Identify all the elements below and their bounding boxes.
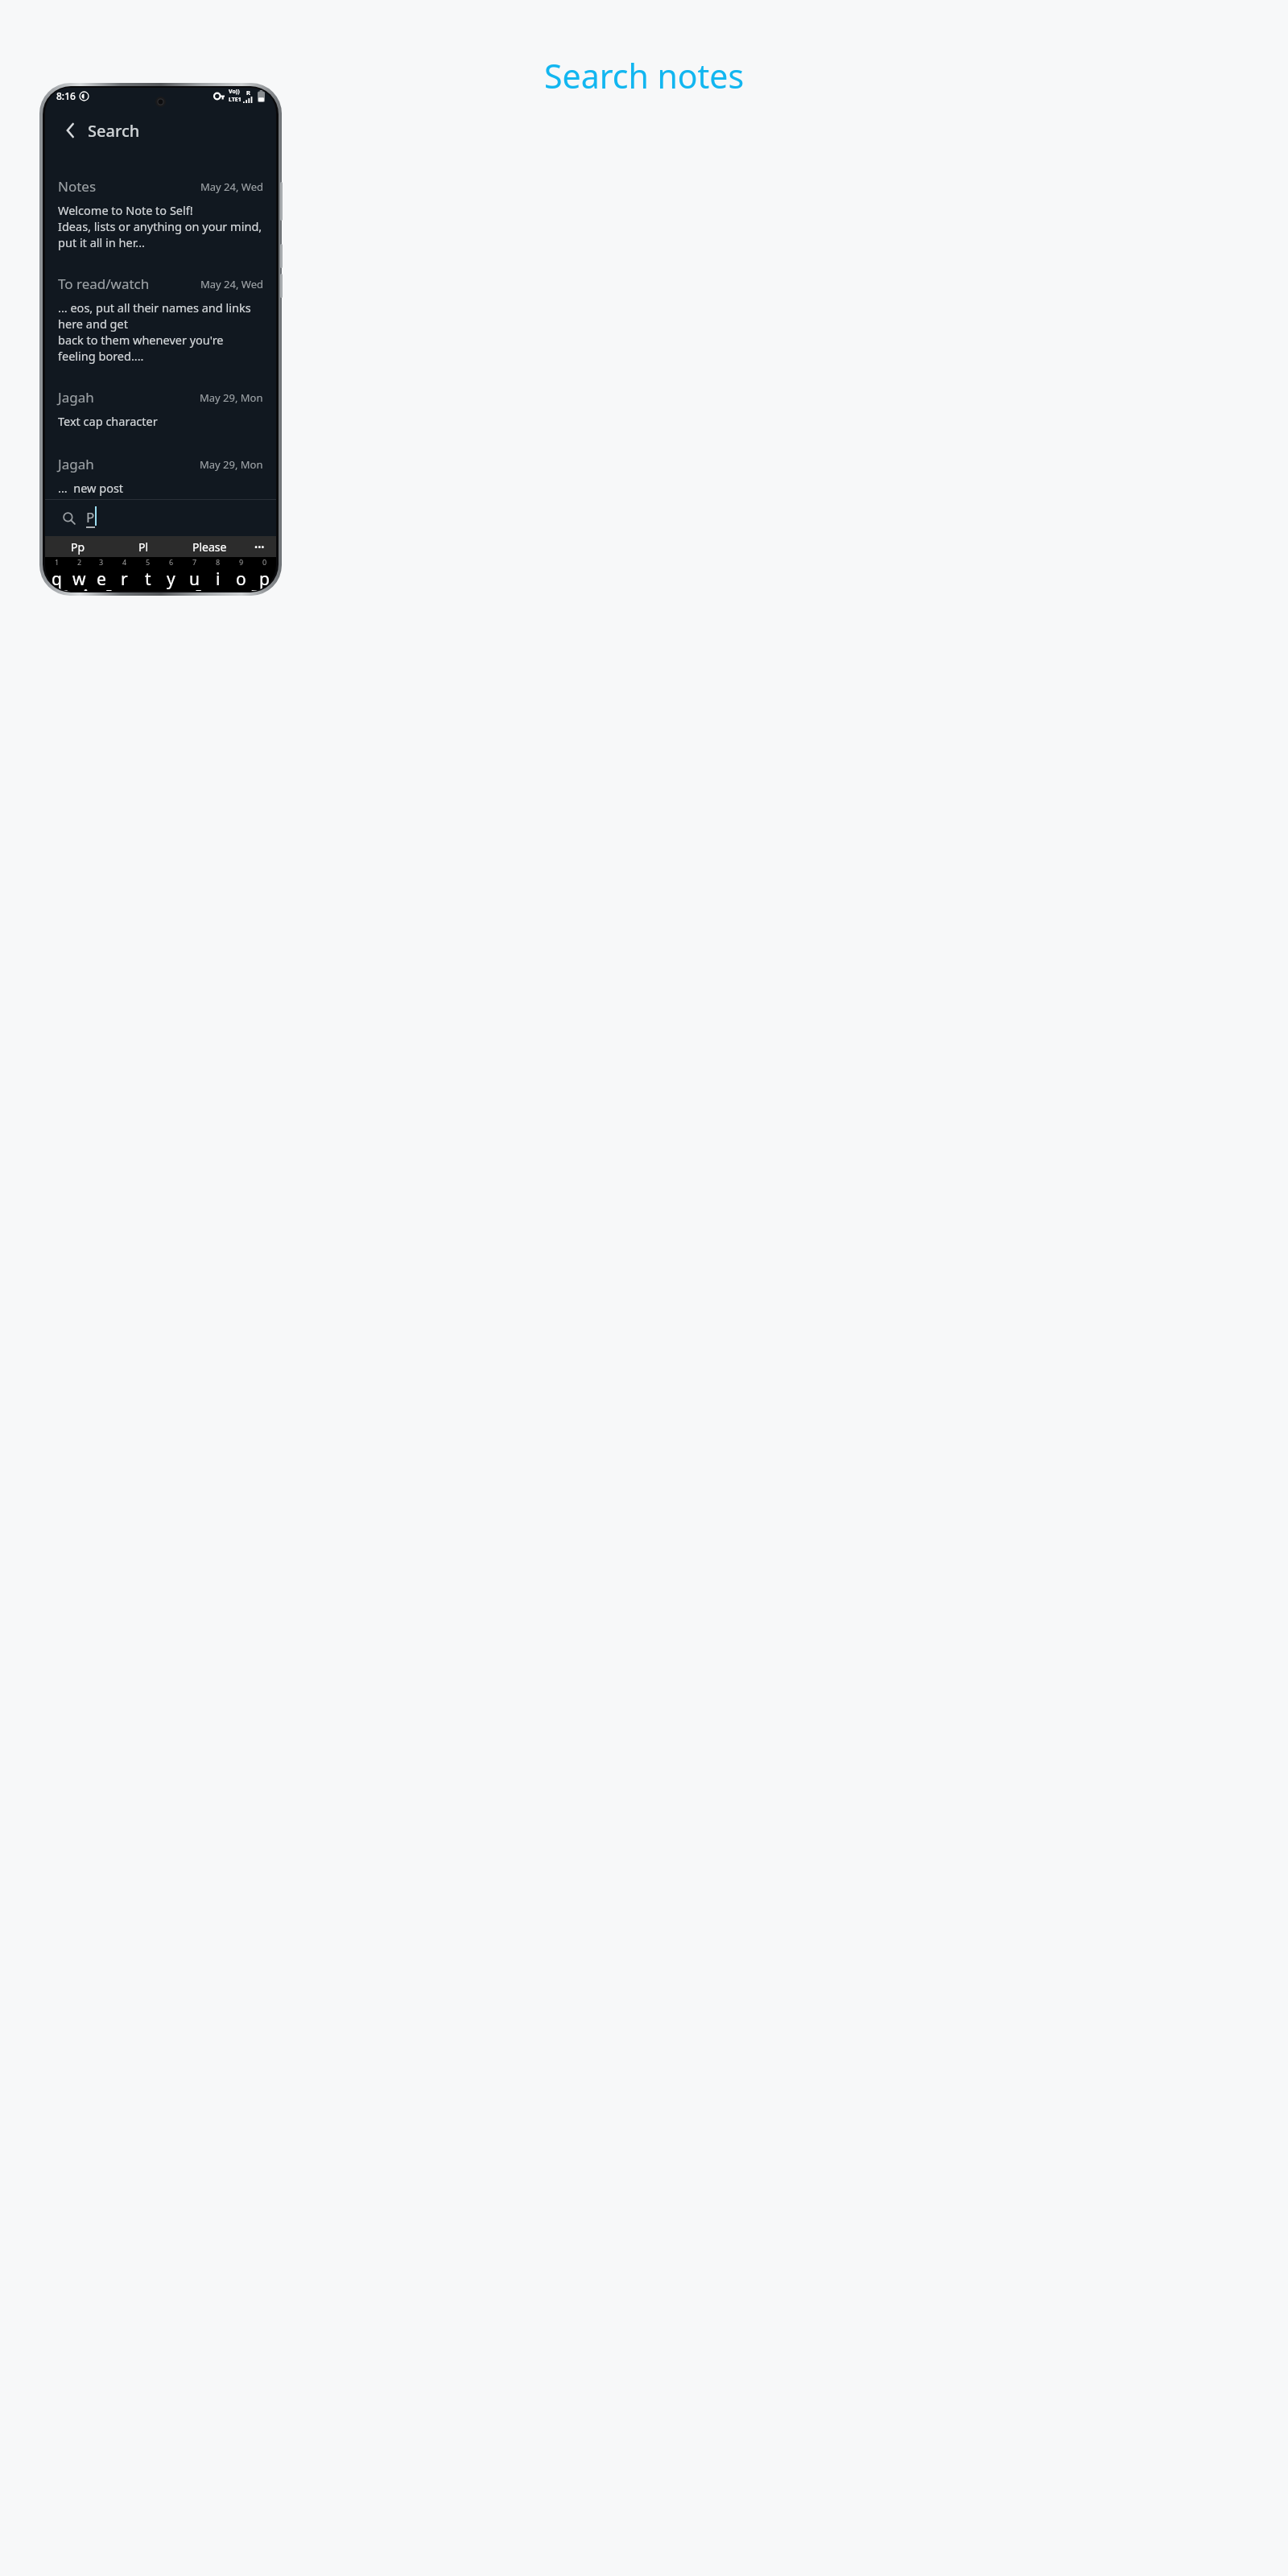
staticText: 7 (192, 557, 197, 567)
button[interactable]: 6 (159, 557, 183, 591)
button[interactable]: P (45, 500, 276, 536)
staticText: ... eos, put all their names and links h… (58, 299, 263, 332)
button[interactable]: Jagah (45, 385, 276, 432)
button[interactable]: 4 (113, 557, 136, 591)
staticText: o (236, 568, 246, 591)
staticText: May 29, Mon (200, 390, 263, 405)
staticText: w (72, 568, 86, 591)
staticText: 6 (169, 557, 174, 567)
staticText: R (246, 89, 250, 97)
staticText: Jagah (58, 455, 94, 473)
button[interactable]: 8 (206, 557, 229, 591)
staticText: back to them whenever you're feeling bor… (58, 332, 263, 364)
staticText: i (216, 568, 221, 591)
staticText: 1 (55, 557, 60, 567)
staticText: ••• (254, 541, 265, 553)
button[interactable]: Pl (110, 536, 176, 557)
button[interactable]: Jagah (45, 452, 276, 499)
staticText: p (259, 568, 270, 591)
button[interactable]: To read/watch (45, 271, 276, 367)
staticText: To read/watch (58, 275, 150, 293)
button[interactable]: 1 (45, 557, 68, 591)
staticText: Text cap character (58, 413, 158, 429)
staticText: ... new post (58, 480, 124, 496)
staticText: 8 (216, 557, 221, 567)
staticText: Please (192, 539, 227, 555)
button[interactable]: More suggestions (242, 536, 276, 557)
staticText: Ideas, lists or anything on your mind, p… (58, 218, 263, 250)
staticText: May 29, Mon (200, 457, 263, 472)
staticText: 5 (146, 557, 151, 567)
staticText: u (189, 568, 200, 591)
staticText: LTE1 (229, 96, 242, 104)
staticText: 4 (122, 557, 127, 567)
button[interactable]: Notes (45, 174, 276, 254)
staticText: 0 (262, 557, 267, 567)
button[interactable]: 0 (253, 557, 276, 591)
button[interactable]: 7 (183, 557, 206, 591)
staticText: y (167, 568, 175, 591)
staticText: Welcome to Note to Self! (58, 202, 193, 218)
button[interactable]: 5 (136, 557, 159, 591)
staticText: q (52, 568, 62, 591)
staticText: May 24, Wed (200, 277, 263, 291)
staticText: Pp (71, 539, 85, 555)
button[interactable]: Pp (45, 536, 110, 557)
staticText: e (97, 568, 106, 591)
staticText: Vo)) (229, 88, 240, 96)
staticText: Search (88, 120, 140, 142)
staticText: 3 (99, 557, 104, 567)
staticText: Search notes (544, 53, 745, 98)
staticText: 9 (239, 557, 244, 567)
staticText: P (86, 508, 95, 526)
staticText: Jagah (58, 388, 94, 407)
button[interactable]: 2 (68, 557, 90, 591)
staticText: 2 (77, 557, 82, 567)
button[interactable]: 9 (229, 557, 253, 591)
staticText: r (121, 568, 128, 591)
button[interactable]: Back (58, 118, 82, 142)
staticText: May 24, Wed (200, 180, 263, 194)
staticText: 8:16 (56, 89, 76, 102)
staticText: t (145, 568, 151, 591)
button[interactable]: Please (176, 536, 242, 557)
staticText: Pl (138, 539, 149, 555)
staticText: Notes (58, 177, 97, 196)
button[interactable]: 3 (90, 557, 113, 591)
